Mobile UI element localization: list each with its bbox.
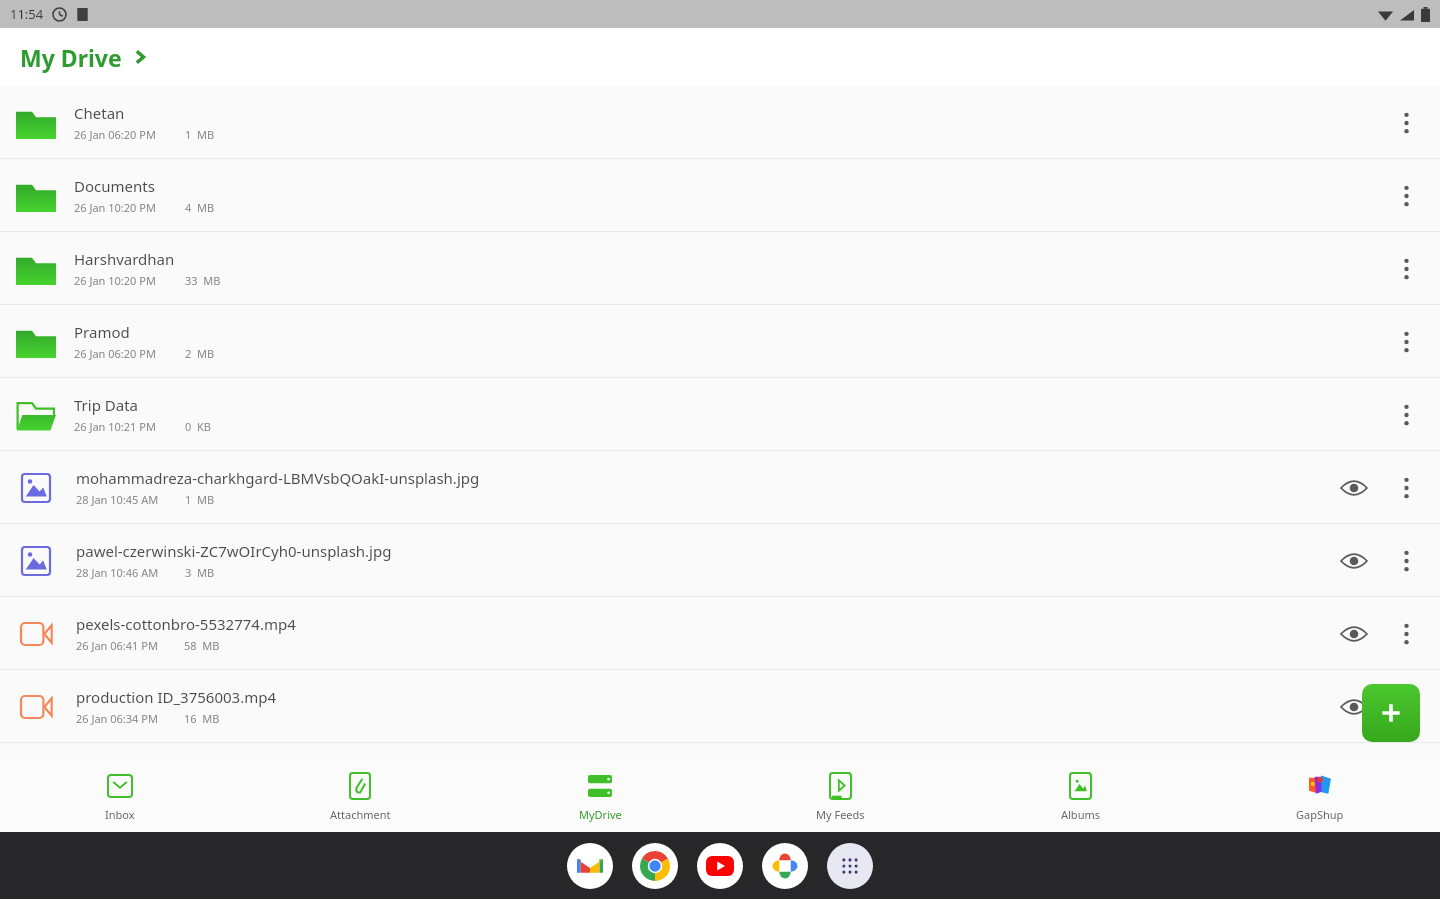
staticText: 33 MB <box>185 273 221 288</box>
staticText: MyDrive <box>579 807 622 822</box>
staticText: 26 Jan 06:20 PM <box>74 127 156 142</box>
button[interactable]: More options <box>1384 466 1428 510</box>
button[interactable]: More options <box>1384 393 1428 437</box>
staticText: 58 MB <box>184 638 220 653</box>
button[interactable]: More options <box>1384 320 1428 364</box>
staticText: 26 Jan 10:21 PM <box>74 419 156 434</box>
staticText: 16 MB <box>184 711 220 726</box>
button[interactable]: Albums <box>960 760 1200 832</box>
staticText: Harshvardhan <box>74 249 175 269</box>
button[interactable]: More options <box>1384 685 1428 729</box>
staticText: Attachment <box>330 807 391 822</box>
staticText: 26 Jan 06:41 PM <box>76 638 158 653</box>
button[interactable]: Preview <box>1332 539 1376 583</box>
button[interactable]: Pramod <box>0 305 1440 378</box>
button[interactable]: More options <box>1384 101 1428 145</box>
staticText: My Drive <box>20 42 122 73</box>
button[interactable]: MyDrive <box>480 760 720 832</box>
staticText: 28 Jan 10:45 AM <box>76 492 159 507</box>
staticText: production ID_3756003.mp4 <box>76 687 277 707</box>
staticText: 26 Jan 10:20 PM <box>74 200 156 215</box>
button[interactable]: Preview <box>1332 466 1376 510</box>
staticText: 26 Jan 06:34 PM <box>76 711 158 726</box>
button[interactable]: YouTube <box>697 843 743 889</box>
button[interactable]: GapShup <box>1200 760 1440 832</box>
staticText: pawel-czerwinski-ZC7wOIrCyh0-unsplash.jp… <box>76 541 392 561</box>
staticText: 26 Jan 06:20 PM <box>74 346 156 361</box>
staticText: 28 Jan 10:46 AM <box>76 565 159 580</box>
staticText: Chetan <box>74 103 125 123</box>
button[interactable]: Photos <box>762 843 808 889</box>
staticText: Albums <box>1061 807 1100 822</box>
staticText: Trip Data <box>74 395 138 415</box>
staticText: Pramod <box>74 322 130 342</box>
button[interactable]: Inbox <box>0 760 240 832</box>
button[interactable]: Gmail <box>567 843 613 889</box>
button[interactable]: mohammadreza-charkhgard-LBMVsbQOakI-unsp… <box>0 451 1440 524</box>
button[interactable]: Trip Data <box>0 378 1440 451</box>
staticText: pexels-cottonbro-5532774.mp4 <box>76 614 296 634</box>
button[interactable]: production ID_3756003.mp4 <box>0 670 1440 743</box>
staticText: 0 KB <box>185 419 211 434</box>
staticText: 26 Jan 10:20 PM <box>74 273 156 288</box>
button[interactable]: More options <box>1384 247 1428 291</box>
button[interactable]: My Feeds <box>720 760 960 832</box>
button[interactable]: Preview <box>1332 685 1376 729</box>
button[interactable]: More options <box>1384 539 1428 583</box>
button[interactable]: My Drive <box>0 28 1440 86</box>
staticText: 1 MB <box>185 127 215 142</box>
staticText: mohammadreza-charkhgard-LBMVsbQOakI-unsp… <box>76 468 480 488</box>
button[interactable]: Chetan <box>0 86 1440 159</box>
button[interactable]: Attachment <box>240 760 480 832</box>
staticText: 1 MB <box>185 492 215 507</box>
staticText: My Feeds <box>816 807 865 822</box>
staticText: Documents <box>74 176 155 196</box>
button[interactable]: pexels-cottonbro-5532774.mp4 <box>0 597 1440 670</box>
button[interactable]: More options <box>1384 174 1428 218</box>
button[interactable]: pawel-czerwinski-ZC7wOIrCyh0-unsplash.jp… <box>0 524 1440 597</box>
staticText: GapShup <box>1296 807 1344 822</box>
button[interactable]: Chrome <box>632 843 678 889</box>
staticText: 3 MB <box>185 565 215 580</box>
button[interactable]: Documents <box>0 159 1440 232</box>
staticText: 4 MB <box>185 200 215 215</box>
staticText: 11:54 <box>10 5 44 23</box>
staticText: Inbox <box>105 807 135 822</box>
button[interactable]: Harshvardhan <box>0 232 1440 305</box>
button[interactable]: Preview <box>1332 612 1376 656</box>
button[interactable]: Add <box>1362 684 1420 742</box>
button[interactable]: More options <box>1384 612 1428 656</box>
staticText: 2 MB <box>185 346 215 361</box>
button[interactable]: Apps <box>827 843 873 889</box>
